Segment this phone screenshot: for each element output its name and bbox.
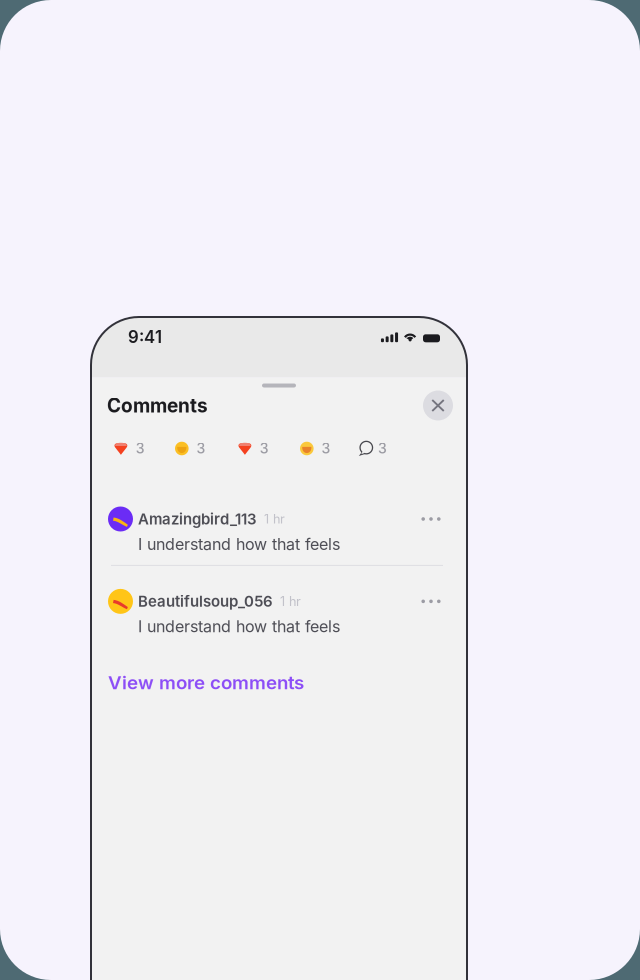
staticText: Comments (107, 394, 208, 417)
staticText: 3 (197, 440, 206, 457)
staticText: I understand how that feels (138, 617, 340, 636)
button[interactable]: 3 comments (358, 438, 387, 458)
button[interactable]: Love reaction, 3 (238, 438, 269, 458)
button[interactable]: More options (421, 592, 441, 610)
staticText: 3 (378, 440, 387, 457)
button[interactable]: Laugh reaction, 3 (300, 438, 331, 458)
staticText: Beautifulsoup_056 (138, 592, 273, 610)
staticText: Amazingbird_113 (138, 510, 257, 528)
button[interactable]: View more comments (91, 636, 467, 700)
staticText: 1 hr (264, 511, 285, 527)
button[interactable]: Laugh reaction, 3 (175, 438, 206, 458)
staticText: 3 (322, 440, 331, 457)
staticText: I understand how that feels (138, 534, 340, 554)
button[interactable]: Close (423, 390, 453, 420)
staticText: 3 (260, 440, 269, 457)
staticText: 3 (136, 440, 145, 457)
button[interactable]: More options (421, 510, 441, 528)
staticText: 1 hr (280, 594, 301, 609)
staticText: 9:41 (128, 327, 162, 347)
staticText: View more comments (108, 671, 304, 694)
button[interactable]: Love reaction, 3 (114, 438, 145, 458)
